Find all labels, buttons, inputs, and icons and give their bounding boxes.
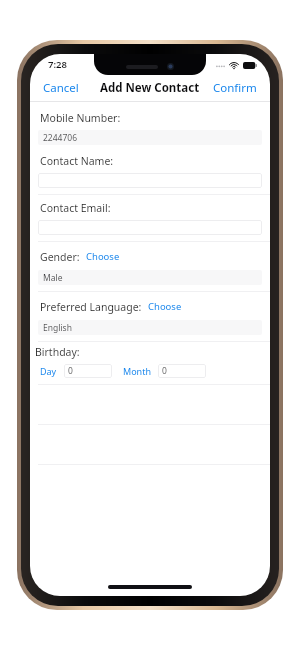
staticText: 7:28 xyxy=(48,58,67,71)
staticText: Birthday: xyxy=(35,345,80,359)
staticText: Mobile Number: xyxy=(40,111,121,125)
button[interactable]: Day xyxy=(38,363,59,379)
staticText: Choose xyxy=(86,250,120,263)
staticText: Add New Contact xyxy=(100,80,200,96)
button[interactable] xyxy=(38,220,262,235)
button[interactable]: Month xyxy=(121,363,153,379)
staticText: Preferred Language: xyxy=(40,300,142,314)
button[interactable]: Cancel xyxy=(30,76,92,100)
staticText: Cancel xyxy=(43,80,79,96)
button[interactable]: Choose xyxy=(85,248,121,265)
button[interactable] xyxy=(38,173,262,188)
button[interactable]: 0 xyxy=(158,364,206,378)
button[interactable]: 2244706 xyxy=(38,130,262,145)
button[interactable]: English xyxy=(38,320,262,335)
staticText: Choose xyxy=(148,300,182,313)
staticText: Confirm xyxy=(213,80,257,96)
staticText: 0 xyxy=(68,365,73,377)
staticText: Gender: xyxy=(40,250,80,264)
button[interactable]: 0 xyxy=(64,364,112,378)
staticText: Contact Email: xyxy=(40,201,111,215)
staticText: Male xyxy=(43,272,63,284)
staticText: Day xyxy=(40,365,57,377)
button[interactable]: Choose xyxy=(147,298,183,315)
staticText: Month xyxy=(123,365,151,377)
button[interactable]: Confirm xyxy=(200,76,270,100)
staticText: 0 xyxy=(162,365,167,377)
staticText: English xyxy=(43,322,72,334)
staticText: 2244706 xyxy=(43,132,78,144)
button[interactable]: Male xyxy=(38,270,262,285)
staticText: Contact Name: xyxy=(40,154,114,168)
